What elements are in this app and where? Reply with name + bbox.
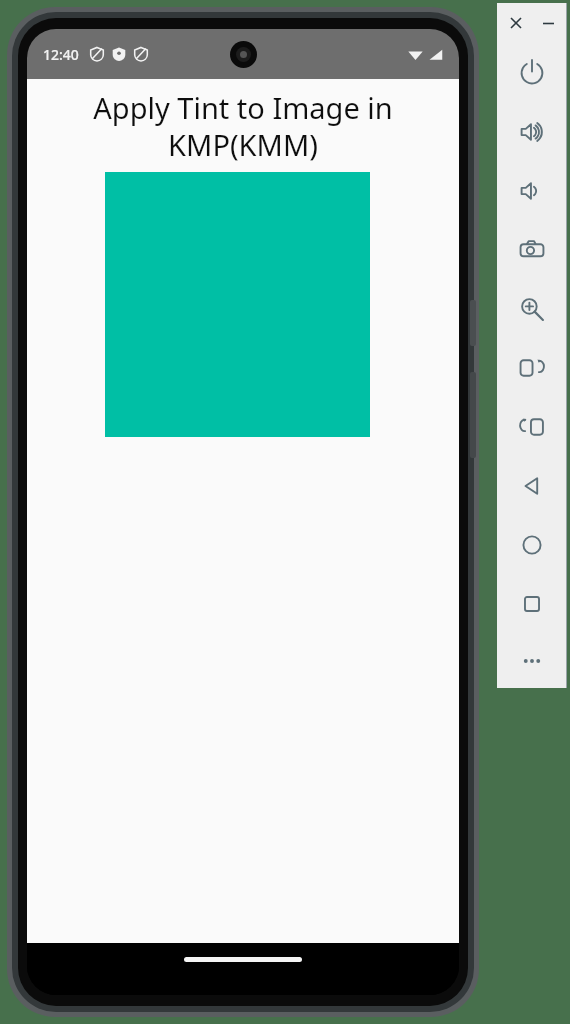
- button[interactable]: Rotate right: [497, 397, 567, 456]
- button[interactable]: Volume up: [497, 102, 567, 161]
- button[interactable]: Back: [497, 456, 567, 515]
- button[interactable]: Minimize: [539, 14, 557, 32]
- button[interactable]: Power: [497, 43, 567, 102]
- button[interactable]: Recents: [497, 574, 567, 633]
- button[interactable]: Zoom: [497, 279, 567, 338]
- button[interactable]: Home: [184, 957, 302, 962]
- button[interactable]: Screenshot: [497, 220, 567, 279]
- button[interactable]: Rotate left: [497, 338, 567, 397]
- button[interactable]: More: [497, 633, 567, 688]
- staticText: 12:40: [43, 45, 79, 64]
- staticText: Apply Tint to Image in KMP(KMM): [35, 88, 451, 165]
- button[interactable]: Volume down: [497, 161, 567, 220]
- button[interactable]: Close: [507, 14, 525, 32]
- button[interactable]: Home: [497, 515, 567, 574]
